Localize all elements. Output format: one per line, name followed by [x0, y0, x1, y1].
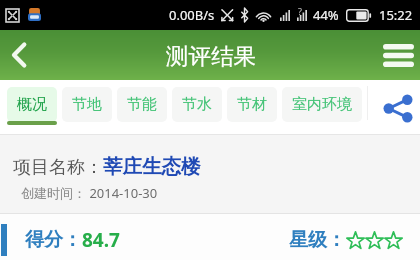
button[interactable]: 节材: [227, 87, 277, 122]
staticText: 星级：: [289, 228, 346, 252]
staticText: 室内环境: [292, 95, 352, 114]
staticText: 创建时间：: [21, 185, 86, 201]
button[interactable]: 节地: [62, 87, 112, 122]
staticText: 44%: [313, 6, 339, 24]
staticText: 节能: [127, 95, 157, 114]
staticText: 概况: [17, 95, 47, 114]
button[interactable]: Back: [0, 30, 38, 80]
staticText: 测评结果: [166, 42, 256, 70]
button[interactable]: 节能: [117, 87, 167, 122]
staticText: ?: [298, 5, 302, 17]
staticText: 节材: [237, 95, 267, 114]
button[interactable]: Menu: [376, 30, 420, 80]
staticText: 2014-10-30: [86, 184, 158, 202]
staticText: 莘庄生态楼: [103, 154, 201, 179]
staticText: 15:22: [379, 6, 413, 24]
staticText: 得分：: [25, 228, 82, 252]
button[interactable]: 节水: [172, 87, 222, 122]
button[interactable]: 概况: [7, 87, 57, 122]
staticText: 84.7: [82, 227, 120, 253]
button[interactable]: 室内环境: [282, 87, 362, 122]
button[interactable]: Share: [372, 85, 420, 131]
staticText: 节水: [182, 95, 212, 114]
staticText: 项目名称：: [13, 156, 103, 179]
staticText: 0.00B/s: [169, 6, 215, 24]
staticText: 节地: [72, 95, 102, 114]
